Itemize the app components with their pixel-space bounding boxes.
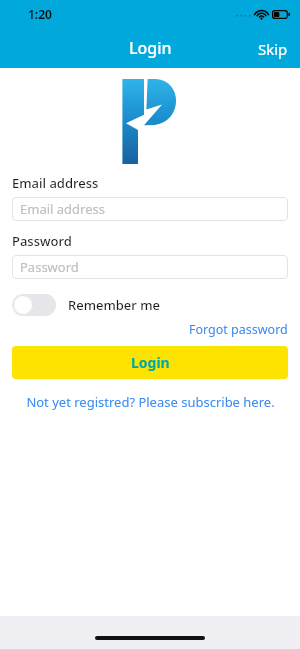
staticText: Skip (258, 39, 288, 59)
staticText: Password (20, 258, 79, 276)
staticText: Email address (20, 200, 105, 218)
button[interactable]: Remember me (12, 294, 160, 316)
staticText: Login (131, 353, 170, 372)
button[interactable]: Forgot password (189, 321, 288, 338)
button[interactable]: Login (12, 346, 288, 379)
staticText: Email address (12, 174, 99, 192)
staticText: 1:20 (28, 6, 52, 22)
staticText: Remember me (68, 296, 160, 314)
staticText: Password (12, 232, 72, 250)
button[interactable]: Password (12, 255, 288, 279)
button[interactable]: Login (129, 37, 172, 59)
button[interactable]: Not yet registred? Please subscribe here… (26, 393, 275, 411)
staticText: Not yet registred? Please subscribe here… (26, 393, 275, 411)
button[interactable]: Skip (258, 39, 300, 68)
button[interactable]: Email address (12, 197, 288, 221)
staticText: Forgot password (189, 321, 288, 338)
